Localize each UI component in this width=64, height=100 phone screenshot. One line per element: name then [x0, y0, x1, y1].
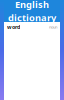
staticText: word	[7, 23, 20, 31]
staticText: noun	[49, 24, 57, 30]
staticText: dictionary	[8, 11, 56, 24]
staticText: English	[15, 0, 49, 10]
